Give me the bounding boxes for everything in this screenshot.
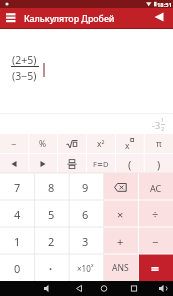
button[interactable] xyxy=(4,11,18,25)
staticText: % xyxy=(39,138,47,150)
staticText: ×10 xyxy=(77,263,91,274)
staticText: 18:51 xyxy=(157,1,172,9)
button[interactable]: ) xyxy=(144,154,173,174)
button[interactable] xyxy=(97,282,111,295)
staticText: − xyxy=(152,234,159,249)
button[interactable]: 1 xyxy=(0,228,34,255)
staticText: (2+5) xyxy=(12,53,37,67)
button[interactable]: 9 xyxy=(68,174,103,201)
button[interactable]: × xyxy=(103,201,138,228)
button[interactable]: F xyxy=(86,154,115,174)
staticText: ( xyxy=(128,157,132,172)
button[interactable]: % xyxy=(28,134,57,154)
staticText: 2 xyxy=(161,125,165,133)
staticText: 2 xyxy=(48,234,55,249)
button[interactable]: ( xyxy=(115,154,144,174)
staticText: ANS xyxy=(112,262,129,274)
staticText: x xyxy=(125,140,130,152)
button[interactable] xyxy=(28,154,57,174)
button[interactable]: 3 xyxy=(68,228,103,255)
staticText: x² xyxy=(97,138,105,150)
button[interactable] xyxy=(57,134,86,154)
staticText: 9 xyxy=(82,180,89,195)
button[interactable]: x² xyxy=(86,134,115,154)
staticText: π xyxy=(156,138,162,150)
staticText: − xyxy=(11,138,17,150)
button[interactable] xyxy=(149,10,169,27)
button[interactable]: ÷ xyxy=(138,201,173,228)
staticText: ) xyxy=(157,157,161,172)
staticText: 5 xyxy=(48,207,55,222)
button[interactable] xyxy=(57,154,86,174)
staticText: 8 xyxy=(48,180,55,195)
button[interactable]: x xyxy=(115,134,144,154)
staticText: 1 xyxy=(161,116,165,124)
staticText: · xyxy=(49,261,53,276)
button[interactable]: − xyxy=(0,134,28,154)
staticText: 1 xyxy=(14,234,21,249)
button[interactable]: ×10 xyxy=(68,255,103,281)
button[interactable]: = xyxy=(138,255,173,281)
button[interactable]: 4 xyxy=(0,201,34,228)
button[interactable]: − xyxy=(138,228,173,255)
staticText: + xyxy=(117,234,124,249)
staticText: 7 xyxy=(14,180,21,195)
button[interactable]: 2 xyxy=(34,228,68,255)
button[interactable]: 6 xyxy=(68,201,103,228)
button[interactable]: · xyxy=(34,255,68,281)
staticText: 4 xyxy=(14,207,21,222)
button[interactable]: 5 xyxy=(34,201,68,228)
staticText: 6 xyxy=(82,207,89,222)
button[interactable]: AC xyxy=(138,174,173,201)
staticText: 0 xyxy=(14,261,21,276)
button[interactable]: 8 xyxy=(34,174,68,201)
staticText: F xyxy=(93,159,97,169)
button[interactable]: ANS xyxy=(103,255,138,281)
button[interactable] xyxy=(41,282,55,295)
button[interactable] xyxy=(72,282,86,295)
staticText: Калькулятор Дробей xyxy=(24,13,115,25)
button[interactable] xyxy=(127,282,141,295)
staticText: ÷ xyxy=(152,207,159,222)
staticText: D xyxy=(103,159,109,169)
staticText: -3 xyxy=(152,119,161,131)
button[interactable] xyxy=(0,154,28,174)
button[interactable]: + xyxy=(103,228,138,255)
staticText: 3 xyxy=(82,234,89,249)
staticText: AC xyxy=(150,182,162,194)
staticText: (3−5) xyxy=(12,69,37,83)
button[interactable]: 7 xyxy=(0,174,34,201)
staticText: × xyxy=(117,207,124,222)
button[interactable] xyxy=(156,282,170,295)
staticText: x xyxy=(91,262,94,269)
button[interactable] xyxy=(103,174,138,201)
button[interactable]: π xyxy=(144,134,173,154)
staticText: = xyxy=(151,259,160,278)
button[interactable]: 0 xyxy=(0,255,34,281)
